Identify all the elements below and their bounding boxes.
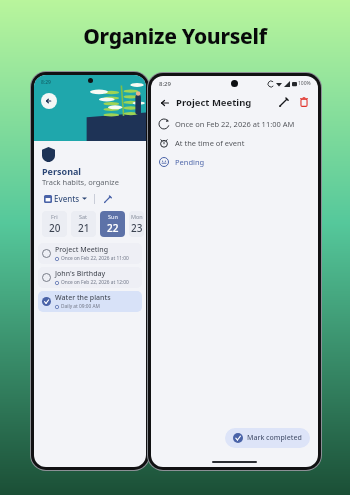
staticText: 22 xyxy=(107,221,119,235)
staticText: Mon xyxy=(131,213,143,220)
button[interactable]: Mark completed xyxy=(225,428,310,448)
staticText: Once on Feb 22, 2026 at 11:00 AM xyxy=(175,119,295,129)
button[interactable]: Water the plants xyxy=(38,291,142,312)
staticText: Fri xyxy=(51,213,58,220)
staticText: 100% xyxy=(298,80,311,87)
button[interactable]: Edit xyxy=(276,95,290,109)
button[interactable]: At the time of event xyxy=(151,138,318,148)
button[interactable]: Events xyxy=(42,192,89,205)
button[interactable]: Sat xyxy=(71,211,96,237)
staticText: Track habits, organize yourself xyxy=(42,177,146,187)
staticText: Mark completed xyxy=(247,433,302,443)
button[interactable]: Back xyxy=(41,93,57,109)
button[interactable]: John's Birthday xyxy=(38,267,142,288)
button[interactable]: Project Meeting xyxy=(38,243,142,264)
staticText: Personal xyxy=(42,165,82,177)
staticText: Project Meeting xyxy=(176,96,252,109)
staticText: Sun xyxy=(108,213,118,220)
staticText: Events xyxy=(54,193,80,204)
staticText: Project Meeting xyxy=(55,245,108,255)
staticText: At the time of event xyxy=(175,138,245,148)
button[interactable]: Delete xyxy=(297,95,311,109)
staticText: 20 xyxy=(49,221,61,235)
button[interactable]: Edit xyxy=(101,193,113,205)
staticText: Daily at 09:00 AM xyxy=(61,303,100,310)
button[interactable]: Once on Feb 22, 2026 at 11:00 AM xyxy=(151,119,318,129)
button[interactable]: Fri xyxy=(42,211,67,237)
staticText: Sat xyxy=(79,213,88,220)
staticText: Organize Yourself xyxy=(0,22,350,51)
staticText: 21 xyxy=(78,221,90,235)
staticText: Once on Feb 22, 2026 at 12:00 xyxy=(61,279,129,286)
staticText: Pending xyxy=(175,157,205,167)
staticText: 8:29 xyxy=(159,80,171,88)
staticText: 23 xyxy=(131,221,143,235)
staticText: John's Birthday xyxy=(55,269,106,279)
button[interactable]: Sun xyxy=(100,211,125,237)
button[interactable]: Mon xyxy=(129,211,144,237)
staticText: Water the plants xyxy=(55,293,111,303)
staticText: Once on Feb 22, 2026 at 11:00 xyxy=(61,255,129,262)
button[interactable]: Back xyxy=(158,96,171,109)
button[interactable]: Pending xyxy=(151,157,318,167)
staticText: 8:29 xyxy=(41,79,51,86)
